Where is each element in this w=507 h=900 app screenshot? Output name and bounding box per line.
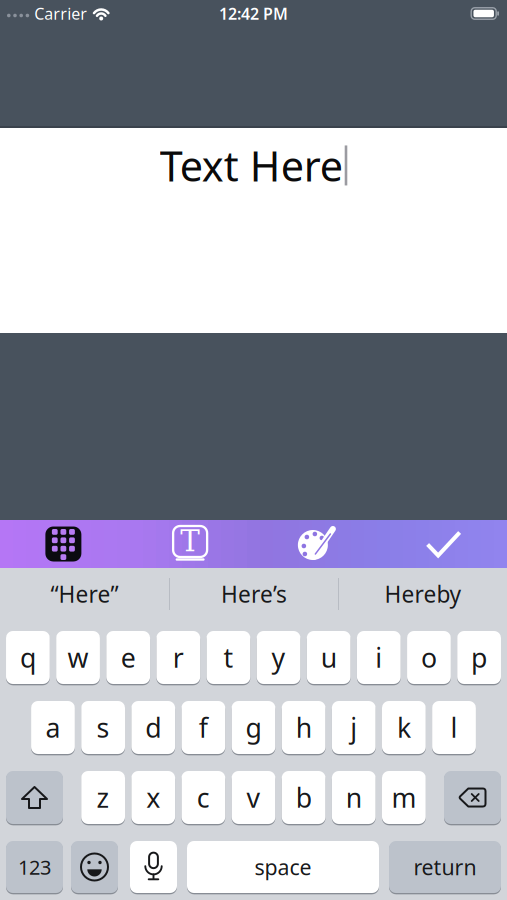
button[interactable]: n bbox=[332, 771, 376, 824]
staticText: i bbox=[375, 640, 382, 675]
staticText: “Here” bbox=[50, 579, 118, 609]
button[interactable]: x bbox=[131, 771, 175, 824]
button[interactable]: Emoji bbox=[71, 841, 118, 893]
staticText: 12:42 PM bbox=[219, 3, 288, 24]
staticText: Text Here bbox=[160, 138, 343, 193]
button[interactable]: w bbox=[56, 631, 100, 684]
staticText: s bbox=[97, 710, 110, 745]
button[interactable]: o bbox=[407, 631, 451, 684]
button[interactable]: m bbox=[382, 771, 426, 824]
staticText: o bbox=[421, 640, 437, 675]
staticText: p bbox=[471, 640, 487, 675]
staticText: e bbox=[121, 640, 136, 675]
button[interactable]: return bbox=[389, 841, 501, 893]
staticText: x bbox=[146, 780, 160, 815]
button[interactable]: space bbox=[187, 841, 379, 893]
button[interactable]: s bbox=[81, 701, 125, 754]
button[interactable]: i bbox=[357, 631, 401, 684]
button[interactable]: t bbox=[206, 631, 250, 684]
staticText: return bbox=[413, 853, 476, 881]
button[interactable]: e bbox=[106, 631, 150, 684]
staticText: m bbox=[391, 780, 416, 815]
button[interactable]: Hereby bbox=[339, 567, 507, 621]
staticText: d bbox=[145, 710, 161, 745]
button[interactable]: u bbox=[307, 631, 351, 684]
button[interactable]: r bbox=[156, 631, 200, 684]
staticText: l bbox=[450, 710, 457, 745]
button[interactable]: l bbox=[432, 701, 476, 754]
staticText: 123 bbox=[18, 854, 51, 880]
button[interactable]: f bbox=[181, 701, 225, 754]
staticText: g bbox=[245, 710, 261, 745]
button[interactable]: z bbox=[81, 771, 125, 824]
button[interactable]: y bbox=[257, 631, 300, 684]
button[interactable]: “Here” bbox=[0, 567, 169, 621]
button[interactable]: Dictate bbox=[130, 841, 177, 893]
staticText: Here’s bbox=[221, 579, 287, 609]
staticText: b bbox=[296, 780, 312, 815]
staticText: q bbox=[20, 640, 36, 675]
button[interactable]: d bbox=[131, 701, 175, 754]
button[interactable]: c bbox=[181, 771, 225, 824]
staticText: z bbox=[97, 780, 110, 815]
staticText: Carrier bbox=[34, 3, 87, 24]
button[interactable]: v bbox=[232, 771, 275, 824]
button[interactable]: Text style bbox=[127, 520, 254, 568]
staticText: a bbox=[45, 710, 60, 745]
staticText: T bbox=[180, 524, 200, 558]
button[interactable]: a bbox=[31, 701, 75, 754]
staticText: n bbox=[346, 780, 362, 815]
button[interactable]: p bbox=[457, 631, 501, 684]
staticText: c bbox=[197, 780, 210, 815]
staticText: u bbox=[321, 640, 337, 675]
button[interactable]: g bbox=[232, 701, 275, 754]
button[interactable]: Done bbox=[380, 520, 507, 568]
button[interactable]: Colors bbox=[253, 520, 380, 568]
button[interactable]: Shift bbox=[6, 771, 63, 824]
button[interactable]: Keypad bbox=[0, 520, 127, 568]
button[interactable]: b bbox=[282, 771, 325, 824]
staticText: r bbox=[173, 640, 184, 675]
staticText: h bbox=[296, 710, 312, 745]
staticText: y bbox=[272, 640, 286, 675]
button[interactable]: Delete bbox=[444, 771, 501, 824]
staticText: k bbox=[397, 710, 411, 745]
staticText: t bbox=[223, 640, 233, 675]
button[interactable]: q bbox=[6, 631, 50, 684]
staticText: w bbox=[67, 640, 88, 675]
button[interactable]: h bbox=[282, 701, 325, 754]
button[interactable]: 123 bbox=[6, 841, 63, 893]
button[interactable]: Here’s bbox=[170, 567, 338, 621]
staticText: space bbox=[254, 853, 311, 881]
button[interactable]: j bbox=[332, 701, 376, 754]
staticText: v bbox=[246, 780, 260, 815]
button[interactable]: k bbox=[382, 701, 426, 754]
staticText: f bbox=[199, 710, 208, 745]
staticText: Hereby bbox=[384, 579, 461, 609]
staticText: j bbox=[350, 710, 357, 745]
